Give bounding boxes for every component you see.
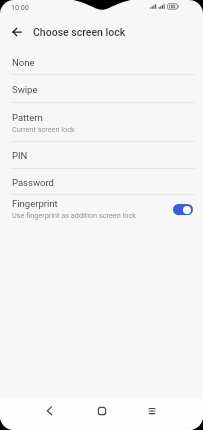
button[interactable] — [173, 204, 193, 215]
button[interactable] — [39, 400, 61, 422]
button[interactable]: Fingerprint — [0, 195, 203, 222]
button[interactable]: PIN — [0, 142, 203, 169]
staticText: Current screen lock — [12, 125, 75, 134]
staticText: 10:00 — [11, 3, 29, 11]
staticText: Swipe — [12, 84, 38, 95]
staticText: Fingerprint — [12, 198, 58, 209]
staticText: Pattern — [12, 112, 43, 123]
staticText: PIN — [12, 150, 28, 161]
button[interactable]: None — [0, 49, 203, 75]
button[interactable]: Password — [0, 169, 203, 195]
button[interactable]: Swipe — [0, 75, 203, 103]
staticText: Password — [12, 177, 54, 188]
staticText: Choose screen lock — [33, 26, 126, 38]
staticText: Use fingerprint as addition screen lock — [12, 211, 136, 220]
staticText: None — [12, 57, 35, 68]
button[interactable] — [141, 400, 163, 422]
button[interactable]: Pattern — [0, 103, 203, 142]
button[interactable] — [91, 400, 113, 422]
button[interactable] — [6, 21, 28, 43]
